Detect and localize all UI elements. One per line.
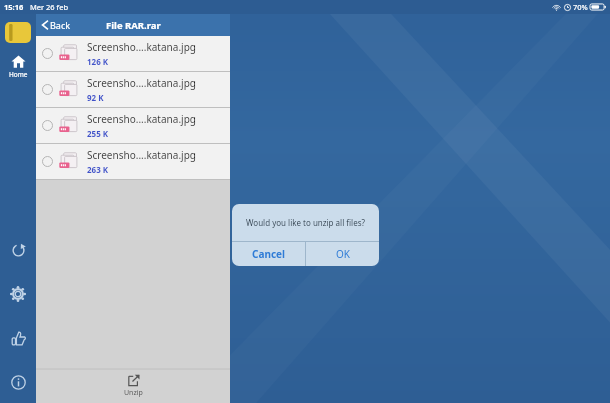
button[interactable]: Cancel: [232, 242, 305, 266]
staticText: Screensho....katana.jpg: [87, 40, 196, 54]
button[interactable]: App icon: [5, 22, 31, 43]
button[interactable]: Screensho....katana.jpg: [36, 36, 230, 72]
staticText: Back: [50, 19, 71, 31]
button[interactable]: Home: [0, 52, 36, 81]
staticText: Mer 26 feb: [30, 2, 69, 12]
button[interactable]: Like: [3, 323, 33, 353]
staticText: 126 K: [87, 56, 109, 67]
button[interactable]: Refresh: [3, 235, 33, 265]
button[interactable]: Screensho....katana.jpg: [36, 108, 230, 144]
staticText: OK: [336, 247, 350, 261]
button[interactable]: Settings: [3, 279, 33, 309]
staticText: Screensho....katana.jpg: [87, 148, 196, 162]
staticText: Screensho....katana.jpg: [87, 112, 196, 126]
staticText: 70%: [573, 2, 588, 12]
staticText: 15:16: [4, 2, 24, 12]
staticText: Unzip: [124, 388, 143, 398]
staticText: 255 K: [87, 128, 109, 139]
button[interactable]: OK: [306, 242, 379, 266]
staticText: Cancel: [252, 247, 286, 261]
staticText: Would you like to unzip all files?: [246, 217, 365, 228]
staticText: File RAR.rar: [106, 19, 161, 32]
staticText: 92 K: [87, 92, 104, 103]
button[interactable]: Back: [36, 16, 79, 34]
button[interactable]: Info: [3, 367, 33, 397]
button[interactable]: Screensho....katana.jpg: [36, 72, 230, 108]
button[interactable]: Unzip: [114, 372, 153, 400]
button[interactable]: Screensho....katana.jpg: [36, 144, 230, 180]
staticText: Home: [9, 70, 28, 79]
staticText: 263 K: [87, 164, 109, 175]
staticText: Screensho....katana.jpg: [87, 76, 196, 90]
